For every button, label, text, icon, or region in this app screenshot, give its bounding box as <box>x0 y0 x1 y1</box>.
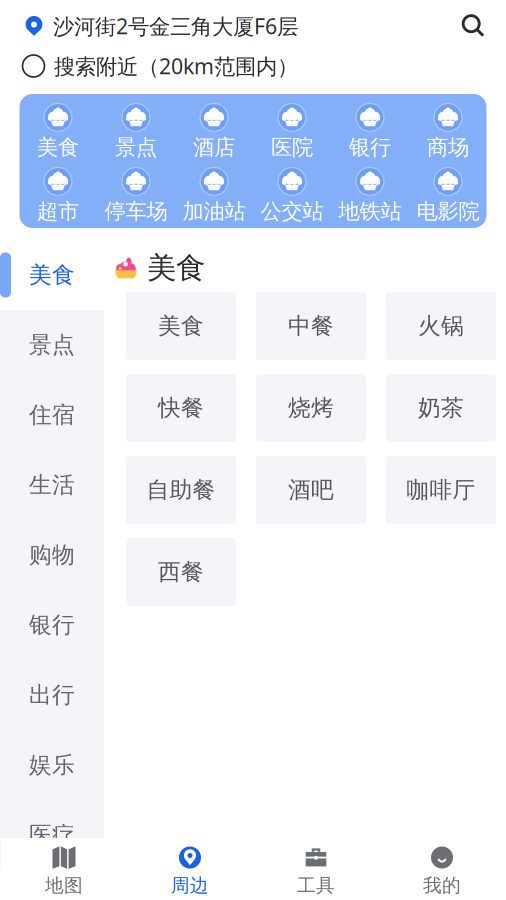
staticText: 地铁站 <box>338 198 401 225</box>
button[interactable]: 地图 <box>1 838 127 900</box>
staticText: 出行 <box>29 681 75 709</box>
button[interactable]: 医院 <box>254 105 330 159</box>
button[interactable]: 美食 <box>0 240 104 310</box>
staticText: 中餐 <box>288 312 334 340</box>
button[interactable]: 酒店 <box>176 105 252 159</box>
staticText: 超市 <box>37 198 79 225</box>
button[interactable]: 景点 <box>0 310 104 380</box>
button[interactable]: 西餐 <box>126 538 236 606</box>
staticText: 酒店 <box>193 134 235 161</box>
staticText: 酒吧 <box>288 476 334 504</box>
staticText: 加油站 <box>182 198 245 225</box>
button[interactable]: 工具 <box>253 838 379 900</box>
staticText: 停车场 <box>104 198 167 225</box>
staticText: 美食 <box>37 134 79 161</box>
button[interactable]: 银行 <box>0 590 104 660</box>
button[interactable]: 超市 <box>20 169 96 223</box>
button[interactable]: 加油站 <box>176 169 252 223</box>
button[interactable]: 火锅 <box>386 292 496 360</box>
staticText: 火锅 <box>418 312 464 340</box>
staticText: 工具 <box>297 874 335 897</box>
button[interactable]: 购物 <box>0 520 104 590</box>
button[interactable]: 中餐 <box>256 292 366 360</box>
staticText: 美食 <box>158 312 204 340</box>
staticText: 美食 <box>147 250 205 286</box>
button[interactable]: 自助餐 <box>126 456 236 524</box>
staticText: 搜索附近（20km范围内） <box>54 52 298 80</box>
button[interactable]: 商场 <box>410 105 486 159</box>
staticText: 银行 <box>29 611 75 639</box>
staticText: 生活 <box>29 471 75 499</box>
button[interactable]: 电影院 <box>410 169 486 223</box>
button[interactable]: 医疗 <box>0 800 104 870</box>
staticText: 购物 <box>29 541 75 569</box>
button[interactable]: 停车场 <box>98 169 174 223</box>
button[interactable]: 景点 <box>98 105 174 159</box>
staticText: 医院 <box>271 134 313 161</box>
button[interactable]: 银行 <box>332 105 408 159</box>
staticText: 医疗 <box>29 821 75 849</box>
staticText: 景点 <box>29 331 75 359</box>
staticText: 商场 <box>427 134 469 161</box>
staticText: 西餐 <box>158 558 204 586</box>
button[interactable]: 住宿 <box>0 380 104 450</box>
staticText: 咖啡厅 <box>406 476 475 504</box>
button[interactable]: 地铁站 <box>332 169 408 223</box>
button[interactable]: 奶茶 <box>386 374 496 442</box>
staticText: 快餐 <box>158 394 204 422</box>
button[interactable]: 公交站 <box>254 169 330 223</box>
staticText: 烧烤 <box>288 394 334 422</box>
button[interactable]: 出行 <box>0 660 104 730</box>
staticText: 景点 <box>115 134 157 161</box>
button[interactable]: 娱乐 <box>0 730 104 800</box>
button[interactable]: 酒吧 <box>256 456 366 524</box>
staticText: 我的 <box>423 874 461 897</box>
button[interactable]: 咖啡厅 <box>386 456 496 524</box>
button[interactable]: 美食 <box>20 105 96 159</box>
button[interactable]: 美食 <box>126 292 236 360</box>
staticText: 公交站 <box>260 198 323 225</box>
button[interactable]: 沙河街2号金三角大厦F6层 <box>0 0 506 52</box>
staticText: 奶茶 <box>418 394 464 422</box>
staticText: 电影院 <box>416 198 479 225</box>
button[interactable]: 烧烤 <box>256 374 366 442</box>
staticText: 美食 <box>29 261 75 289</box>
button[interactable]: 周边 <box>127 838 253 900</box>
button[interactable]: 快餐 <box>126 374 236 442</box>
button[interactable]: 我的 <box>379 838 505 900</box>
staticText: 银行 <box>349 134 391 161</box>
staticText: 自助餐 <box>146 476 215 504</box>
staticText: 周边 <box>171 874 209 897</box>
button[interactable]: 搜索附近（20km范围内） <box>0 52 506 80</box>
button[interactable]: 生活 <box>0 450 104 520</box>
staticText: 娱乐 <box>29 751 75 779</box>
staticText: 住宿 <box>29 401 75 429</box>
staticText: 地图 <box>45 874 83 897</box>
staticText: 沙河街2号金三角大厦F6层 <box>53 12 298 40</box>
